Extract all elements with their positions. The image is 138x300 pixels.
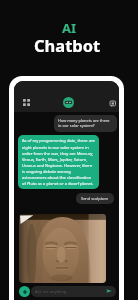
button[interactable]: Attach [19, 286, 30, 297]
staticText: Ask me anything [35, 289, 67, 294]
button[interactable]: Menu [21, 97, 31, 107]
button[interactable]: Ask me anything [31, 286, 116, 297]
staticText: As of my programming date, there are eig… [22, 138, 95, 186]
staticText: Send sculpture [81, 196, 109, 201]
staticText: Chatbot [34, 34, 101, 56]
button[interactable]: New chat [108, 99, 118, 109]
staticText: How many planets are there in our solar … [58, 118, 113, 129]
button[interactable]: How many planets are there in our solar … [54, 115, 117, 132]
staticText: AI [62, 19, 77, 37]
button[interactable]: As of my programming date, there are eig… [18, 135, 99, 189]
button[interactable]: Send sculpture [76, 193, 114, 204]
